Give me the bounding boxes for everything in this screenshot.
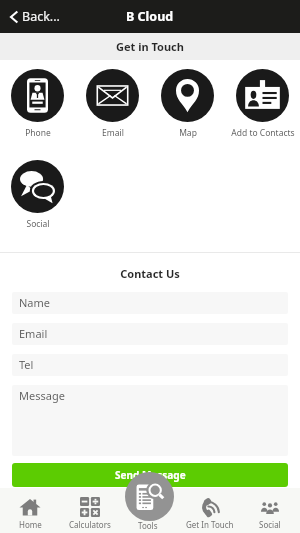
staticText: Home	[19, 519, 42, 530]
staticText: Email	[102, 127, 124, 139]
button[interactable]: Tools	[125, 472, 174, 521]
button[interactable]: Phone	[0, 60, 75, 141]
staticText: Add to Contacts	[231, 127, 295, 139]
staticText: Get in Touch	[116, 39, 184, 54]
button[interactable]: Email	[12, 323, 288, 345]
staticText: Tools	[138, 520, 158, 531]
staticText: Name	[19, 295, 51, 310]
staticText: Map	[179, 127, 197, 139]
staticText: Social	[26, 218, 50, 230]
staticText: Tel	[19, 357, 34, 372]
staticText: Social	[259, 519, 281, 530]
staticText: Email	[19, 326, 48, 341]
staticText: Message	[19, 388, 65, 403]
button[interactable]: Social	[0, 151, 75, 232]
button[interactable]: Send Message	[12, 463, 288, 487]
staticText: Contact Us	[0, 266, 300, 281]
staticText: Calculators	[69, 519, 111, 530]
button[interactable]: Email	[75, 60, 150, 141]
staticText: Send Message	[115, 468, 186, 482]
button[interactable]: Calculators	[60, 488, 120, 533]
button[interactable]: Name	[12, 292, 288, 314]
button[interactable]: Social	[240, 488, 300, 533]
button[interactable]: Back	[0, 0, 66, 33]
staticText: Get In Touch	[186, 519, 234, 530]
staticText: B Cloud	[126, 8, 174, 25]
button[interactable]: Map	[150, 60, 225, 141]
button[interactable]: Message	[12, 385, 288, 456]
staticText: Phone	[25, 127, 51, 139]
staticText: Back...	[22, 8, 60, 25]
button[interactable]: Home	[0, 488, 60, 533]
button[interactable]: Get In Touch	[180, 488, 240, 533]
button[interactable]: Add to Contacts	[225, 60, 300, 141]
button[interactable]: Tel	[12, 354, 288, 376]
